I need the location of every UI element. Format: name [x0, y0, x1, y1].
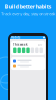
staticText: Habits: [11, 36, 20, 39]
staticText: Build better habits: [4, 3, 51, 10]
staticText: Track every day, stay on streak: [1, 11, 55, 16]
staticText: This week: [13, 43, 28, 46]
staticText: 4/7: [38, 43, 43, 46]
